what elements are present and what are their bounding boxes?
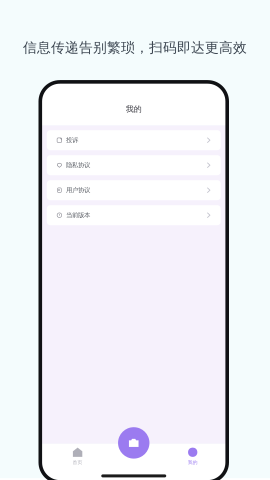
staticText: 我的 xyxy=(126,104,142,114)
button[interactable]: 投诉 xyxy=(47,130,221,150)
button[interactable]: 扫码 xyxy=(118,427,149,459)
button[interactable]: 我的 xyxy=(170,445,216,480)
staticText: 我的 xyxy=(188,459,198,465)
staticText: 信息传递告别繁琐，扫码即达更高效 xyxy=(23,39,247,56)
staticText: 投诉 xyxy=(66,136,78,144)
staticText: 首页 xyxy=(73,459,83,465)
staticText: 用户协议 xyxy=(66,186,90,194)
button[interactable]: 用户协议 xyxy=(47,180,221,200)
button[interactable]: 当前版本 xyxy=(47,205,221,225)
staticText: 隐私协议 xyxy=(66,161,90,169)
button[interactable]: 首页 xyxy=(52,445,101,480)
staticText: 当前版本 xyxy=(66,211,90,219)
button[interactable]: 隐私协议 xyxy=(47,155,221,175)
